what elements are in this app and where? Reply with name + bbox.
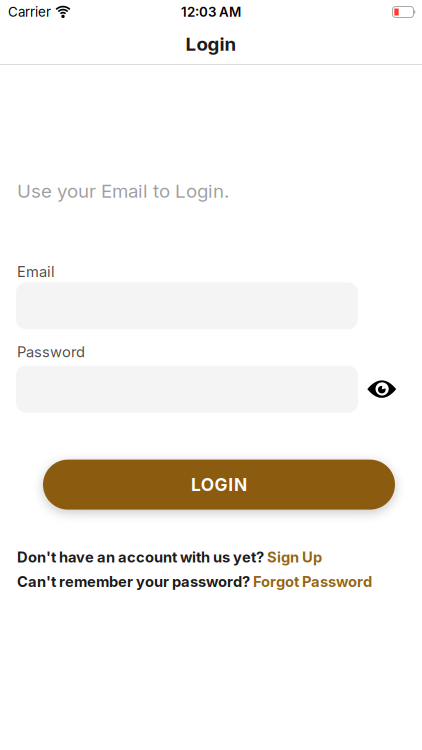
staticText: Can't remember your password?: [17, 573, 253, 590]
staticText: LOGIN: [191, 474, 247, 495]
button[interactable]: Forgot Password: [253, 573, 372, 590]
staticText: Sign Up: [267, 549, 322, 566]
staticText: Carrier: [8, 4, 51, 20]
staticText: 12:03 AM: [181, 4, 241, 20]
button[interactable]: Sign Up: [267, 549, 322, 566]
staticText: Email: [17, 263, 55, 280]
button[interactable]: LOGIN: [43, 460, 395, 510]
staticText: Don't have an account with us yet?: [17, 549, 267, 566]
staticText: Password: [17, 343, 85, 361]
staticText: Forgot Password: [253, 573, 372, 590]
button[interactable]: Show password: [367, 380, 397, 398]
staticText: Login: [185, 33, 236, 55]
staticText: Use your Email to Login.: [17, 180, 229, 202]
